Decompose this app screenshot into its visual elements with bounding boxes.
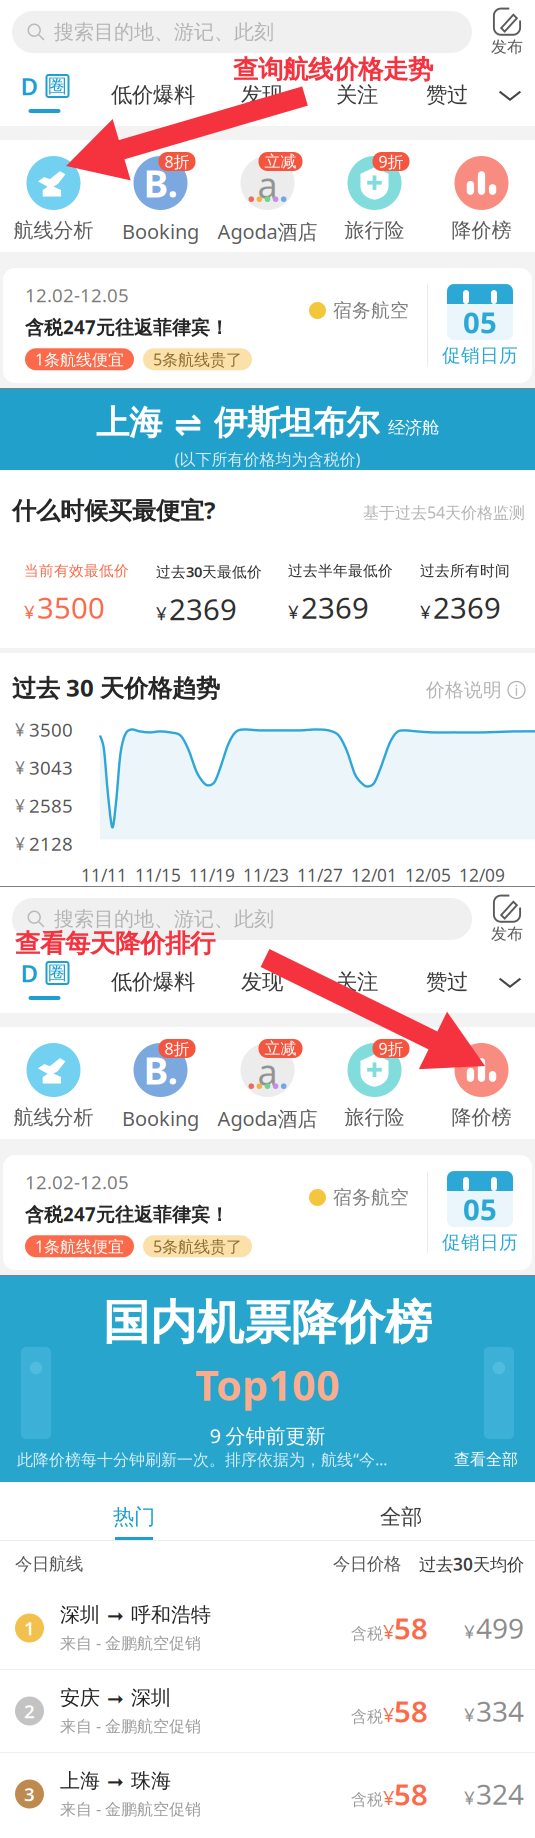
button[interactable]: 9折 (321, 1039, 428, 1137)
staticText: D (20, 957, 38, 989)
button[interactable]: 热门 (0, 1482, 267, 1540)
button[interactable]: 9折 (321, 152, 428, 250)
button[interactable]: 1 (0, 1587, 535, 1669)
button[interactable]: 航线分析 (0, 1039, 107, 1137)
staticText: 含税 (351, 1707, 383, 1726)
staticText: ¥ (156, 600, 167, 625)
staticText: 关注 (336, 82, 378, 108)
staticText: 5条航线贵了 (153, 349, 242, 370)
button[interactable]: 3 (0, 1753, 535, 1835)
staticText: Booking (122, 1105, 199, 1132)
staticText: 1条航线便宜 (35, 1236, 124, 1257)
staticText: 低价爆料 (111, 969, 195, 995)
button[interactable]: D (0, 57, 94, 133)
button[interactable]: 低价爆料 (94, 951, 212, 1013)
button[interactable]: 发布 (472, 890, 535, 948)
button[interactable]: 发现 (212, 951, 312, 1013)
button[interactable]: 12.02-12.05 (0, 1155, 535, 1270)
staticText: 搜索目的地、游记、此刻 (54, 907, 274, 931)
button[interactable]: 降价榜 (428, 152, 535, 250)
staticText: 过去半年最低价 (288, 562, 393, 580)
button[interactable]: 搜索目的地、游记、此刻 (12, 898, 472, 940)
staticText: 8折 (164, 1038, 189, 1059)
staticText: 58 (394, 1608, 428, 1647)
staticText: 含税247元往返菲律宾！ (25, 314, 229, 339)
staticText: 旅行险 (344, 218, 404, 243)
staticText: 324 (476, 1775, 524, 1813)
button[interactable]: 更多 (492, 64, 528, 126)
button[interactable]: 发现 (212, 64, 312, 126)
button[interactable]: 发布 (472, 3, 535, 61)
staticText: ¥ (464, 1619, 475, 1644)
button[interactable]: 低价爆料 (94, 64, 212, 126)
staticText: 圈 (48, 74, 67, 97)
staticText: 2369 (301, 588, 369, 627)
button[interactable]: 12.02-12.05 (0, 268, 535, 383)
staticText: 2 (24, 1699, 35, 1723)
staticText: ¥ (15, 718, 25, 741)
button[interactable]: D (0, 944, 94, 1020)
staticText: 今日航线 (15, 1553, 83, 1575)
staticText: 334 (476, 1692, 524, 1730)
staticText: i (514, 680, 518, 700)
staticText: 促销日历 (442, 344, 518, 367)
button[interactable]: a (214, 152, 321, 250)
staticText: 58 (394, 1691, 428, 1730)
button[interactable]: 更多 (492, 951, 528, 1013)
staticText: 安庆 ➞ 深圳 (60, 1686, 171, 1710)
staticText: 立减 (264, 152, 296, 171)
button[interactable]: 赞过 (402, 951, 492, 1013)
staticText: 1 (24, 1616, 35, 1640)
staticText: 上海 ⇌ 伊斯坦布尔 (96, 402, 379, 443)
button[interactable]: a (214, 1039, 321, 1137)
staticText: 含税 (351, 1624, 383, 1643)
staticText: 经济舱 (388, 417, 439, 438)
staticText: Agoda酒店 (217, 218, 317, 245)
staticText: 过去所有时间 (420, 562, 510, 580)
staticText: 赞过 (426, 969, 468, 995)
button[interactable]: B. (107, 1039, 214, 1137)
staticText: 降价榜 (451, 218, 511, 243)
button[interactable]: 降价榜 (428, 1039, 535, 1137)
button[interactable]: 2 (0, 1670, 535, 1752)
staticText: 含税247元往返菲律宾！ (25, 1201, 229, 1226)
staticText: 此降价榜每十分钟刷新一次。排序依据为，航线“今... (17, 1449, 387, 1470)
staticText: 国内机票降价榜 (103, 1294, 432, 1351)
staticText: 58 (394, 1774, 428, 1813)
staticText: 发布 (491, 37, 523, 57)
staticText: Top100 (195, 1357, 340, 1412)
staticText: 航线分析 (13, 218, 93, 243)
staticText: 降价榜 (451, 1105, 511, 1130)
staticText: ¥ (15, 756, 25, 779)
staticText: ¥ (464, 1702, 475, 1727)
button[interactable]: B. (107, 152, 214, 250)
staticText: 12/09 (459, 863, 505, 886)
staticText: Booking (122, 218, 199, 245)
staticText: 来自 - 金鹏航空促销 (60, 1632, 201, 1653)
button[interactable]: 全部 (267, 1482, 534, 1540)
staticText: 关注 (336, 969, 378, 995)
staticText: ¥ (24, 599, 35, 624)
staticText: ¥ (464, 1785, 475, 1810)
staticText: ¥ (15, 832, 25, 855)
button[interactable]: 价格说明 (426, 678, 525, 703)
staticText: 宿务航空 (333, 1186, 409, 1209)
staticText: 11/11 (81, 863, 127, 886)
staticText: 来自 - 金鹏航空促销 (60, 1715, 201, 1736)
staticText: 9折 (378, 1038, 403, 1059)
staticText: a (257, 161, 277, 208)
button[interactable]: 关注 (312, 64, 402, 126)
staticText: ¥ (383, 1618, 394, 1644)
button[interactable]: 关注 (312, 951, 402, 1013)
staticText: 价格说明 (426, 678, 502, 701)
staticText: 基于过去54天价格监测 (363, 502, 525, 523)
button[interactable]: 航线分析 (0, 152, 107, 250)
button[interactable]: 搜索目的地、游记、此刻 (12, 11, 472, 53)
button[interactable]: 查看全部 (454, 1450, 518, 1469)
staticText: 深圳 ➞ 呼和浩特 (60, 1603, 211, 1627)
staticText: 查询航线价格走势 (233, 54, 433, 85)
staticText: 8折 (164, 151, 189, 172)
button[interactable]: 赞过 (402, 64, 492, 126)
staticText: 圈 (48, 961, 67, 984)
staticText: 1条航线便宜 (35, 349, 124, 370)
